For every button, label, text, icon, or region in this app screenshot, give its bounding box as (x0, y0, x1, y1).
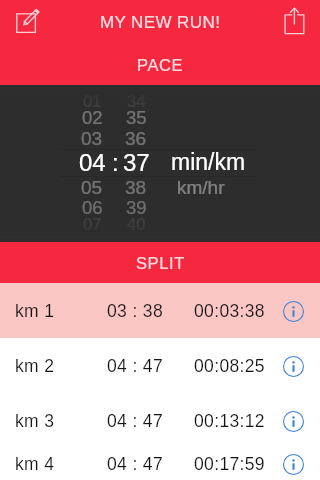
staticText: 00:17:59 (194, 454, 265, 474)
staticText: km 4 (15, 454, 55, 474)
staticText: : (112, 149, 119, 176)
staticText: 37 (123, 149, 150, 176)
staticText: 34 (127, 92, 146, 110)
staticText: 39 (126, 197, 147, 218)
staticText: 03 (81, 128, 103, 149)
staticText: 01 (83, 92, 102, 110)
staticText: km/hr (177, 177, 225, 198)
button[interactable]: Share (274, 2, 314, 42)
staticText: SPLIT (136, 254, 185, 272)
staticText: km 3 (15, 411, 55, 431)
staticText: PACE (137, 56, 184, 74)
button[interactable]: km 4 (0, 448, 320, 480)
staticText: 36 (125, 128, 147, 149)
button[interactable]: SPLIT (0, 242, 320, 283)
staticText: 38 (125, 177, 147, 198)
button[interactable]: km 2 (0, 338, 320, 393)
staticText: 04 : 47 (107, 356, 163, 376)
staticText: 00:13:12 (194, 411, 265, 431)
staticText: min/km (171, 149, 246, 175)
staticText: 02 (82, 107, 103, 128)
button[interactable]: PACE (0, 44, 320, 85)
button[interactable]: km 1 (0, 283, 320, 338)
staticText: 04 : 47 (107, 454, 163, 474)
staticText: 04 : 47 (107, 411, 163, 431)
staticText: 04 (79, 149, 106, 176)
button[interactable]: Edit (6, 2, 46, 42)
staticText: MY NEW RUN! (100, 13, 221, 32)
staticText: 03 : 38 (107, 301, 163, 321)
staticText: 00:03:38 (194, 301, 265, 321)
staticText: 00:08:25 (194, 356, 265, 376)
staticText: 07 (83, 215, 102, 233)
staticText: 35 (126, 107, 147, 128)
button[interactable]: km 3 (0, 393, 320, 448)
staticText: 05 (81, 177, 103, 198)
staticText: 06 (82, 197, 103, 218)
staticText: km 2 (15, 356, 55, 376)
staticText: 40 (127, 215, 146, 233)
staticText: km 1 (15, 301, 55, 321)
